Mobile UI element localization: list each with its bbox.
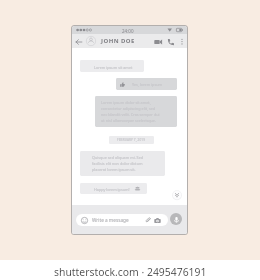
button[interactable]: Scroll to bottom bbox=[172, 190, 182, 200]
button[interactable]: Record voice message bbox=[170, 213, 182, 225]
staticText: placerat lorem ipsum sit. bbox=[92, 167, 136, 172]
staticText: shutterstock.com · 2495476191 bbox=[54, 265, 207, 279]
button[interactable]: Lorem ipsum sit amet bbox=[80, 60, 144, 72]
button[interactable]: Yes, lorem ipsum bbox=[116, 78, 177, 90]
staticText: facilisis elit non dolor dictum bbox=[92, 161, 143, 166]
button[interactable]: More options bbox=[179, 38, 185, 44]
staticText: nec blandit velit. Cras semper dui bbox=[101, 112, 160, 117]
button[interactable]: Call bbox=[167, 38, 175, 46]
staticText: ut nisl ullamcorper scelerisque. bbox=[101, 118, 156, 123]
staticText: Yes, lorem ipsum bbox=[132, 82, 163, 87]
button[interactable]: Happy lorem ipsum! bbox=[80, 183, 147, 194]
staticText: consectetur adipiscing elit, sed bbox=[101, 106, 156, 111]
staticText: 24:00 bbox=[122, 28, 134, 34]
staticText: Lorem ipsum dolor sit amet, bbox=[101, 100, 151, 105]
staticText: JOHN DOE bbox=[101, 37, 135, 45]
button[interactable]: Camera bbox=[154, 217, 161, 224]
staticText: FEBRUARY 7, 2019 bbox=[117, 138, 146, 142]
button[interactable]: Write a message bbox=[76, 214, 168, 226]
button[interactable]: Video call bbox=[154, 38, 162, 46]
staticText: Quisque sed aliquam mi. Sed bbox=[92, 155, 144, 160]
staticText: Write a message bbox=[92, 217, 129, 223]
staticText: Lorem ipsum sit amet bbox=[94, 65, 133, 70]
button[interactable]: Attach file bbox=[145, 217, 151, 223]
button[interactable]: Lorem ipsum dolor sit amet, bbox=[95, 96, 177, 127]
staticText: Happy lorem ipsum! bbox=[94, 187, 130, 192]
button[interactable]: Back bbox=[75, 38, 83, 46]
button[interactable]: Quisque sed aliquam mi. Sed bbox=[80, 151, 165, 176]
